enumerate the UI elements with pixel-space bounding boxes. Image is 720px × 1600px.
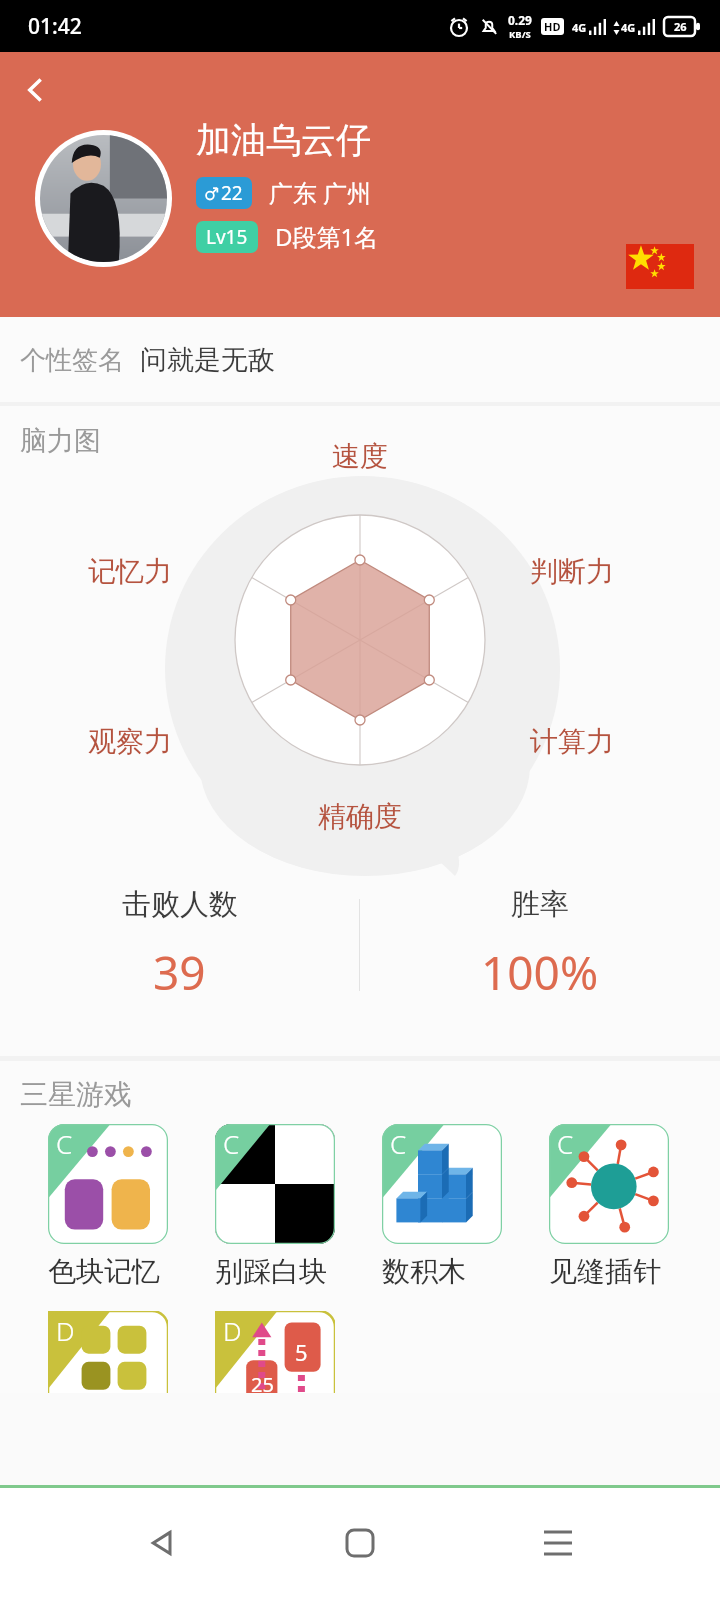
staticText: D段第1名 — [275, 220, 379, 253]
staticText: 25 — [251, 1371, 274, 1398]
staticText: 别踩白块 — [215, 1254, 327, 1289]
button[interactable]: Home — [325, 1508, 395, 1578]
button[interactable]: C — [382, 1124, 502, 1289]
button[interactable]: D — [215, 1311, 335, 1393]
staticText: 记忆力 — [88, 554, 172, 589]
staticText: C — [390, 1126, 407, 1161]
staticText: C — [223, 1126, 240, 1161]
staticText: 个性签名 — [20, 344, 124, 377]
button[interactable]: Recent apps — [523, 1508, 593, 1578]
staticText: KB/S — [509, 28, 531, 41]
staticText: 见缝插针 — [549, 1254, 661, 1289]
button[interactable]: 胜率 — [360, 886, 720, 1004]
staticText: HD — [544, 19, 561, 34]
staticText: 观察力 — [88, 724, 172, 759]
staticText: 三星游戏 — [20, 1077, 132, 1112]
staticText: C — [56, 1126, 73, 1161]
staticText: 0.29 — [508, 12, 532, 28]
staticText: 数积木 — [382, 1254, 466, 1289]
staticText: 4G — [572, 20, 587, 35]
staticText: 精确度 — [318, 799, 402, 834]
staticText: 4G — [621, 20, 636, 35]
staticText: 01:42 — [28, 12, 82, 41]
staticText: 计算力 — [530, 724, 614, 759]
button[interactable]: Back — [12, 66, 60, 114]
staticText: 22 — [221, 180, 243, 206]
button[interactable]: Back — [128, 1508, 198, 1578]
staticText: 击败人数 — [122, 886, 238, 923]
staticText: 判断力 — [530, 554, 614, 589]
staticText: 问就是无敌 — [140, 343, 275, 377]
button[interactable]: Avatar — [35, 130, 172, 267]
button[interactable]: C — [215, 1124, 335, 1289]
staticText: 5 — [295, 1337, 308, 1367]
staticText: C — [557, 1126, 574, 1161]
button[interactable]: C — [549, 1124, 669, 1289]
staticText: D — [223, 1313, 242, 1348]
staticText: Lv15 — [206, 224, 248, 250]
staticText: 广东 广州 — [269, 176, 372, 209]
staticText: 加油乌云仔 — [196, 118, 371, 162]
button[interactable]: Lv15 — [206, 224, 248, 250]
staticText: 色块记忆 — [48, 1254, 160, 1289]
button[interactable]: 击败人数 — [0, 886, 359, 1004]
staticText: 26 — [674, 19, 687, 34]
staticText: 胜率 — [511, 886, 569, 923]
staticText: 速度 — [332, 439, 388, 474]
staticText: 39 — [153, 941, 206, 1004]
button[interactable]: C — [48, 1124, 168, 1289]
staticText: 脑力图 — [20, 424, 101, 458]
button[interactable]: Country flag — [626, 244, 694, 289]
button[interactable]: 22 — [205, 180, 243, 206]
button[interactable]: 个性签名 — [0, 317, 720, 402]
staticText: D — [56, 1313, 75, 1348]
button[interactable]: D — [48, 1311, 168, 1393]
staticText: 100% — [481, 941, 599, 1004]
